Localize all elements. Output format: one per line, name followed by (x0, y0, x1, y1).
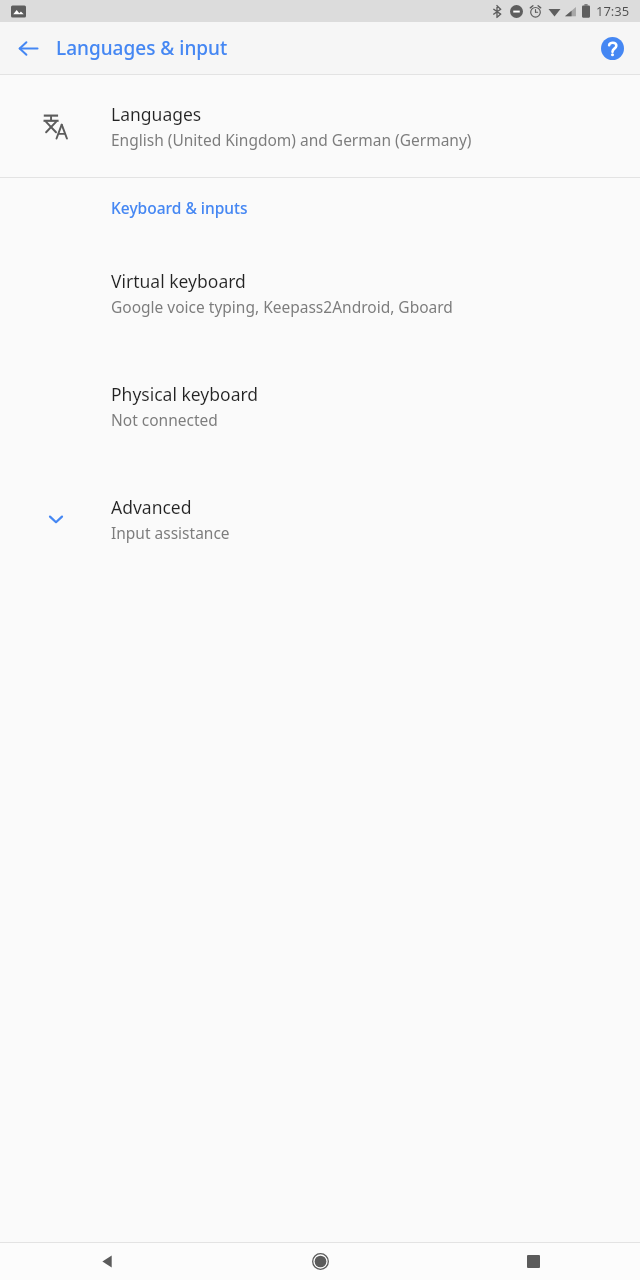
button[interactable]: Virtual keyboard (0, 236, 640, 349)
staticText: English (United Kingdom) and German (Ger… (111, 129, 472, 150)
staticText: Physical keyboard (111, 382, 259, 406)
staticText: Google voice typing, Keepass2Android, Gb… (111, 296, 453, 317)
button[interactable]: Navigate up (8, 28, 48, 68)
staticText: Languages & input (56, 35, 228, 61)
staticText: Languages (111, 102, 202, 126)
button[interactable]: Recent apps (427, 1243, 640, 1280)
button[interactable]: Physical keyboard (0, 349, 640, 462)
button[interactable]: Help (592, 28, 632, 68)
staticText: Keyboard & inputs (111, 197, 248, 218)
staticText: 17:35 (596, 2, 630, 20)
staticText: Input assistance (111, 522, 230, 543)
staticText: Virtual keyboard (111, 269, 246, 293)
button[interactable]: Languages (0, 75, 640, 177)
button[interactable]: Back (0, 1243, 214, 1280)
staticText: Advanced (111, 495, 192, 519)
staticText: Not connected (111, 409, 218, 430)
button[interactable]: Home (214, 1243, 427, 1280)
button[interactable]: Advanced (0, 462, 640, 575)
